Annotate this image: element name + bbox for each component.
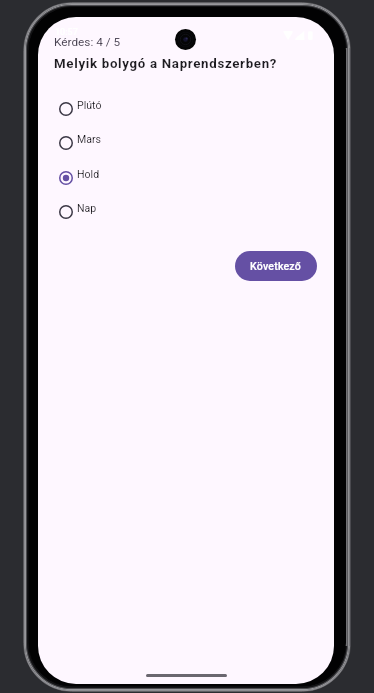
button[interactable]: Mars (55, 125, 317, 160)
button[interactable]: Plútó (55, 91, 317, 126)
staticText: Mars (77, 133, 102, 145)
staticText: Melyik bolygó a Naprendszerben? (54, 56, 278, 72)
other: Front camera (175, 29, 196, 50)
button[interactable]: Nap (55, 194, 317, 229)
button[interactable]: Következő (235, 251, 317, 281)
staticText: Kérdes: 4 / 5 (54, 35, 121, 49)
staticText: Következő (250, 260, 302, 272)
staticText: Hold (77, 168, 100, 180)
staticText: Nap (77, 202, 97, 214)
button[interactable]: Hold (55, 160, 317, 195)
staticText: 10:57 (55, 27, 78, 38)
staticText: Plútó (77, 99, 102, 111)
